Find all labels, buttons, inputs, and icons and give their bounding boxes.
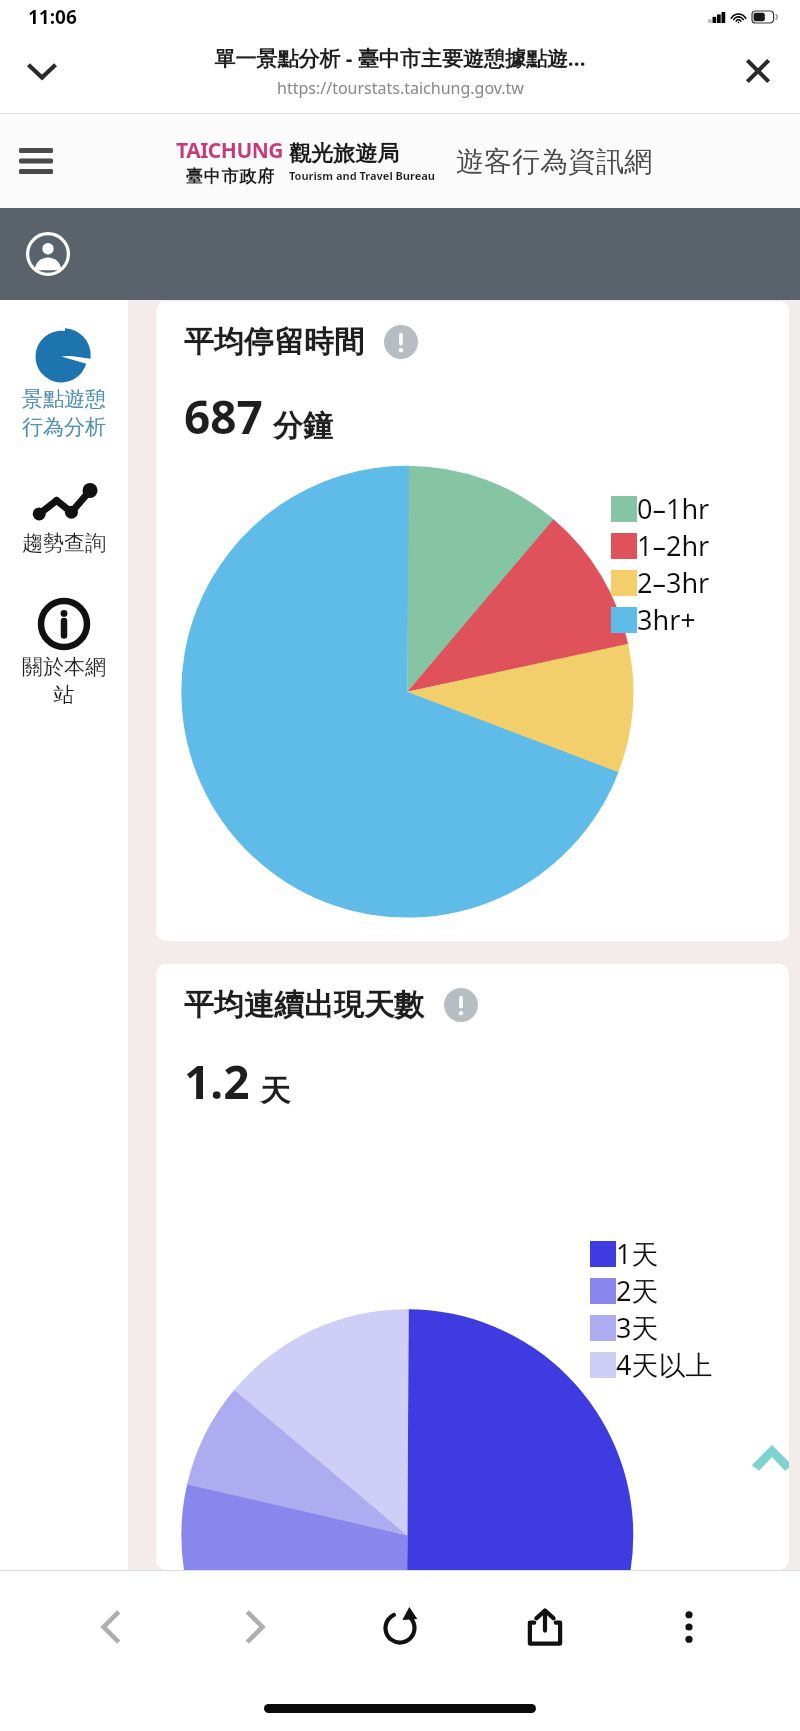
staticText: Tourism and Travel Bureau (289, 168, 436, 183)
button[interactable]: 趨勢查詢 (0, 478, 128, 560)
button[interactable]: Reload (366, 1593, 434, 1661)
button[interactable]: Scroll to top (744, 1429, 789, 1485)
button[interactable]: 關於本網 站 (0, 594, 128, 712)
staticText: 3天 (616, 1309, 659, 1346)
staticText: 遊客行為資訊網 (456, 144, 652, 179)
staticText: 2–3hr (637, 564, 710, 601)
staticText: 平均停留時間 (184, 323, 364, 361)
staticText: https://tourstats.taichung.gov.tw (277, 77, 524, 99)
staticText: 0–1hr (637, 490, 710, 527)
staticText: 觀光旅遊局 (289, 140, 399, 168)
staticText: 2天 (616, 1272, 659, 1309)
button[interactable]: Menu (8, 133, 64, 189)
button[interactable]: 平均連續出現天數 (156, 964, 789, 1570)
staticText: 687 (184, 385, 263, 448)
staticText: 關於本網 站 (22, 654, 106, 708)
staticText: TAICHUNG (176, 136, 284, 165)
button[interactable]: More options (655, 1593, 723, 1661)
staticText: 4天以上 (616, 1346, 713, 1383)
staticText: 1–2hr (637, 527, 710, 564)
button[interactable]: Close (730, 43, 786, 99)
staticText: 平均連續出現天數 (184, 986, 424, 1024)
staticText: 分鐘 (273, 407, 333, 445)
staticText: 1天 (616, 1235, 659, 1272)
staticText: 1.2 (184, 1050, 250, 1113)
staticText: 單一景點分析 - 臺中市主要遊憩據點遊… (214, 44, 586, 73)
button[interactable]: Account (22, 228, 74, 280)
button[interactable]: 平均停留時間 (156, 301, 789, 941)
staticText: 天 (260, 1072, 290, 1110)
button[interactable]: Forward (221, 1593, 289, 1661)
staticText: 景點遊憩 行為分析 (22, 386, 106, 440)
staticText: 趨勢查詢 (22, 530, 106, 556)
button[interactable]: 景點遊憩 行為分析 (0, 322, 128, 444)
button[interactable]: Back (77, 1593, 145, 1661)
staticText: 臺中市政府 (185, 166, 275, 187)
staticText: 3hr+ (637, 601, 696, 638)
button[interactable]: Collapse (14, 43, 70, 99)
staticText: 11:06 (28, 4, 77, 30)
button[interactable]: Share (511, 1593, 579, 1661)
